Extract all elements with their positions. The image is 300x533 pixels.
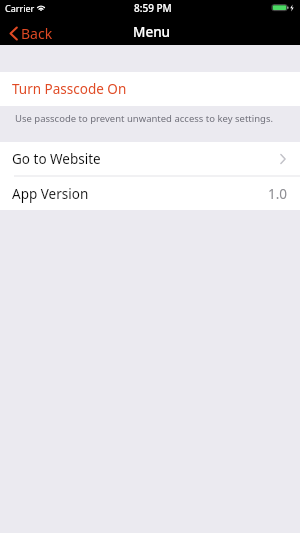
staticText: Go to Website [12, 150, 101, 168]
staticText: Back [21, 24, 53, 43]
button[interactable]: Go to Website [0, 142, 300, 175]
staticText: Carrier [5, 2, 35, 14]
staticText: App Version [12, 185, 89, 203]
staticText: Turn Passcode On [12, 80, 127, 98]
button[interactable]: App Version [0, 177, 300, 210]
other: Battery charging [272, 4, 296, 12]
staticText: Menu [133, 23, 171, 41]
button[interactable]: Back [9, 24, 53, 43]
staticText: 1.0 [268, 185, 288, 203]
staticText: Use passcode to prevent unwanted access … [15, 112, 274, 125]
other: Wi-Fi [36, 3, 46, 11]
button[interactable]: Turn Passcode On [0, 72, 300, 106]
staticText: 8:59 PM [134, 1, 172, 15]
